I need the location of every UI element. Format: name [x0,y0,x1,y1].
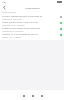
button[interactable]: Recents [40,94,43,97]
staticText: Sunday 17:20 · Savings [2,36,22,38]
button[interactable]: Salary deposit from Acme Corp Inc. [0,20,64,26]
button[interactable]: Transfer to Ann Richardson sent ok [0,32,64,38]
button[interactable]: Back [2,5,7,10]
button[interactable]: Coffee House mobile order paid now [0,26,64,32]
staticText: Salary deposit from Acme Corp Inc. [2,21,39,24]
staticText: Coffee House mobile order paid now [2,27,40,30]
staticText: Yesterday 08:00 · Checking [2,24,25,26]
staticText: Grocery Market payment completed ok [2,15,43,18]
staticText: Monday 08:45 · Card 4421 [2,30,24,32]
button[interactable]: Back [22,94,25,97]
staticText: Transfer to Ann Richardson sent ok [2,33,38,36]
staticText: Transactions [25,6,40,9]
staticText: 9:41 [2,1,7,4]
button[interactable]: Home [31,94,34,97]
staticText: Showing recent [2,11,16,14]
staticText: Today 09:12 · Card 4421 [2,18,22,20]
button[interactable]: Grocery Market payment completed ok [0,14,64,20]
